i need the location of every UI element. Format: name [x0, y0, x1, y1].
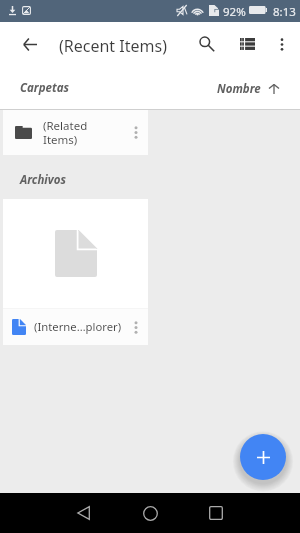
- button[interactable]: Search: [195, 32, 219, 56]
- staticText: 8:13: [273, 4, 296, 20]
- staticText: Archivos: [20, 172, 66, 188]
- staticText: Carpetas: [20, 80, 69, 96]
- button[interactable]: More options: [129, 120, 143, 145]
- button[interactable]: Change view: [235, 32, 259, 56]
- staticText: (Related Items): [43, 118, 98, 148]
- button[interactable]: Recents: [200, 497, 232, 529]
- button[interactable]: (Related Items): [3, 110, 148, 155]
- staticText: Nombre: [217, 81, 261, 97]
- staticText: (Recent Items): [59, 35, 167, 57]
- button[interactable]: Add: [240, 434, 286, 480]
- button[interactable]: More options: [129, 314, 143, 340]
- button[interactable]: Back: [17, 31, 43, 57]
- button[interactable]: (Interne…plorer): [3, 199, 148, 345]
- button[interactable]: More options: [270, 32, 294, 56]
- staticText: 92%: [223, 4, 246, 20]
- button[interactable]: Home: [134, 497, 166, 529]
- button[interactable]: Back: [67, 497, 99, 529]
- staticText: (Interne…plorer): [34, 319, 126, 334]
- button[interactable]: Nombre: [217, 78, 279, 99]
